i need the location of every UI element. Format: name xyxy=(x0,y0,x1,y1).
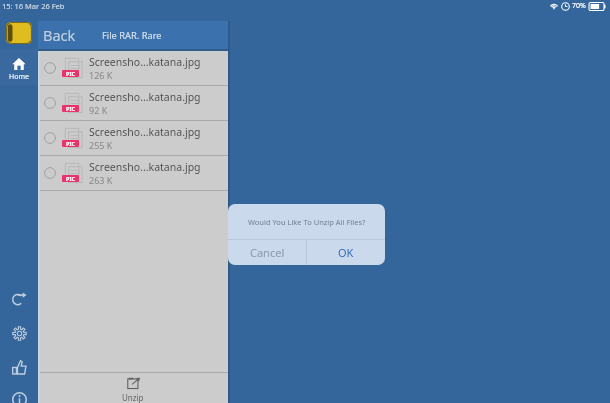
staticText: 70% xyxy=(572,1,586,11)
button[interactable]: PIC xyxy=(38,121,228,156)
staticText: Screensho...katana.jpg xyxy=(89,90,201,104)
staticText: Unzip xyxy=(122,392,144,403)
staticText: Back xyxy=(43,25,76,45)
button[interactable]: PIC xyxy=(38,86,228,121)
button[interactable]: Like xyxy=(2,350,36,384)
staticText: PIC xyxy=(66,105,76,112)
staticText: Screensho...katana.jpg xyxy=(89,160,201,174)
button[interactable]: OK xyxy=(307,240,385,265)
staticText: File RAR. Rare xyxy=(102,29,162,42)
staticText: PIC xyxy=(66,175,76,182)
button[interactable]: App icon xyxy=(6,22,32,44)
staticText: 255 K xyxy=(89,139,113,151)
staticText: Home xyxy=(9,72,29,82)
staticText: 263 K xyxy=(89,174,113,186)
button[interactable]: Back xyxy=(39,21,80,49)
staticText: 126 K xyxy=(89,69,113,81)
button[interactable]: Home xyxy=(0,49,38,85)
button[interactable]: PIC xyxy=(38,51,228,86)
button[interactable]: Settings xyxy=(2,316,36,350)
staticText: OK xyxy=(338,245,354,260)
staticText: Cancel xyxy=(250,245,285,260)
staticText: Would You Like To Unzip All Files? xyxy=(248,217,366,227)
staticText: PIC xyxy=(66,70,76,77)
button[interactable]: Unzip xyxy=(38,373,228,403)
staticText: PIC xyxy=(66,140,76,147)
staticText: 92 K xyxy=(89,104,108,116)
staticText: 15: 16 Mar 26 Feb xyxy=(2,1,65,11)
staticText: Screensho...katana.jpg xyxy=(89,125,201,139)
button[interactable]: PIC xyxy=(38,156,228,191)
button[interactable]: Info xyxy=(2,382,36,403)
button[interactable]: Refresh xyxy=(2,281,36,315)
button[interactable]: Cancel xyxy=(228,240,306,265)
staticText: Screensho...katana.jpg xyxy=(89,55,201,69)
